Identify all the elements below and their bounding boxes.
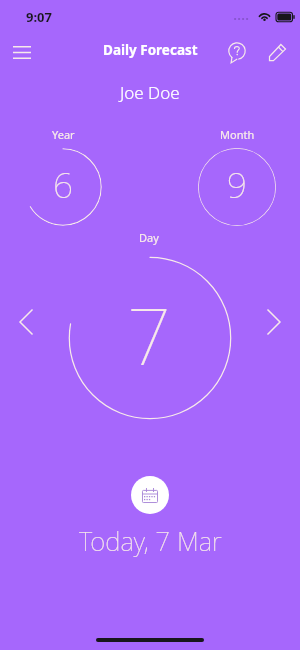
- button[interactable]: 7: [68, 256, 232, 420]
- button[interactable]: Help: [215, 30, 259, 74]
- button[interactable]: Pick a date: [131, 476, 169, 514]
- button[interactable]: Next: [256, 302, 292, 342]
- staticText: Joe Doe: [120, 81, 180, 104]
- button[interactable]: 9: [198, 148, 276, 226]
- staticText: Day: [139, 230, 159, 245]
- staticText: 6: [53, 161, 73, 209]
- button[interactable]: Menu: [0, 30, 44, 74]
- staticText: 9:07: [26, 8, 52, 26]
- staticText: Year: [52, 127, 75, 142]
- button[interactable]: 6: [24, 148, 102, 226]
- staticText: Daily Forecast: [103, 41, 198, 59]
- staticText: Today, 7 Mar: [79, 523, 222, 558]
- staticText: 9: [227, 161, 247, 209]
- button[interactable]: Edit: [255, 30, 299, 74]
- staticText: 7: [127, 283, 171, 388]
- button[interactable]: Previous: [8, 302, 44, 342]
- staticText: Month: [220, 127, 255, 142]
